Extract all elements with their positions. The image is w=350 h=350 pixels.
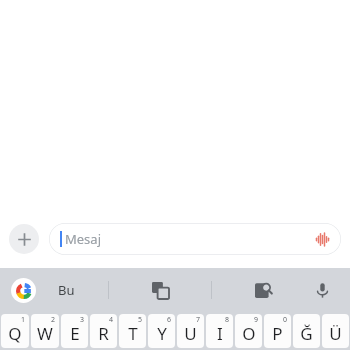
- button[interactable]: 5: [119, 314, 146, 348]
- button[interactable]: Ğ: [293, 314, 320, 348]
- button[interactable]: Bu: [44, 276, 89, 304]
- staticText: Bu: [58, 281, 75, 299]
- staticText: I: [217, 322, 223, 345]
- button[interactable]: 2: [31, 314, 59, 348]
- button[interactable]: 4: [90, 314, 117, 348]
- staticText: 7: [196, 315, 201, 325]
- staticText: U: [184, 322, 197, 345]
- staticText: 9: [254, 315, 259, 325]
- staticText: 8: [225, 315, 230, 325]
- button[interactable]: Add attachment: [9, 224, 39, 254]
- button[interactable]: Search stickers: [251, 278, 275, 302]
- staticText: 0: [283, 315, 288, 325]
- staticText: O: [242, 322, 256, 345]
- button[interactable]: Voice input: [310, 278, 334, 302]
- button[interactable]: Translate: [148, 278, 172, 302]
- staticText: W: [37, 322, 53, 345]
- button[interactable]: 6: [148, 314, 175, 348]
- staticText: 1: [21, 315, 26, 325]
- button[interactable]: Google: [11, 278, 36, 303]
- button[interactable]: 7: [177, 314, 204, 348]
- staticText: R: [98, 322, 109, 345]
- button[interactable]: 1: [1, 314, 29, 348]
- staticText: Ğ: [300, 322, 313, 345]
- staticText: Q: [8, 322, 22, 345]
- staticText: 4: [109, 315, 114, 325]
- staticText: 5: [138, 315, 143, 325]
- staticText: 6: [167, 315, 172, 325]
- button[interactable]: Ü: [322, 314, 349, 348]
- button[interactable]: 9: [235, 314, 262, 348]
- staticText: 3: [80, 315, 85, 325]
- button[interactable]: 8: [206, 314, 233, 348]
- button[interactable]: 0: [264, 314, 291, 348]
- staticText: Y: [157, 322, 167, 345]
- staticText: Mesaj: [65, 230, 101, 248]
- staticText: E: [70, 322, 80, 345]
- button[interactable]: Mesaj: [49, 223, 341, 255]
- staticText: Ü: [329, 322, 342, 345]
- staticText: T: [128, 322, 138, 345]
- staticText: P: [272, 322, 283, 345]
- button[interactable]: Voice message: [312, 229, 332, 249]
- button[interactable]: 3: [61, 314, 88, 348]
- staticText: 2: [51, 315, 56, 325]
